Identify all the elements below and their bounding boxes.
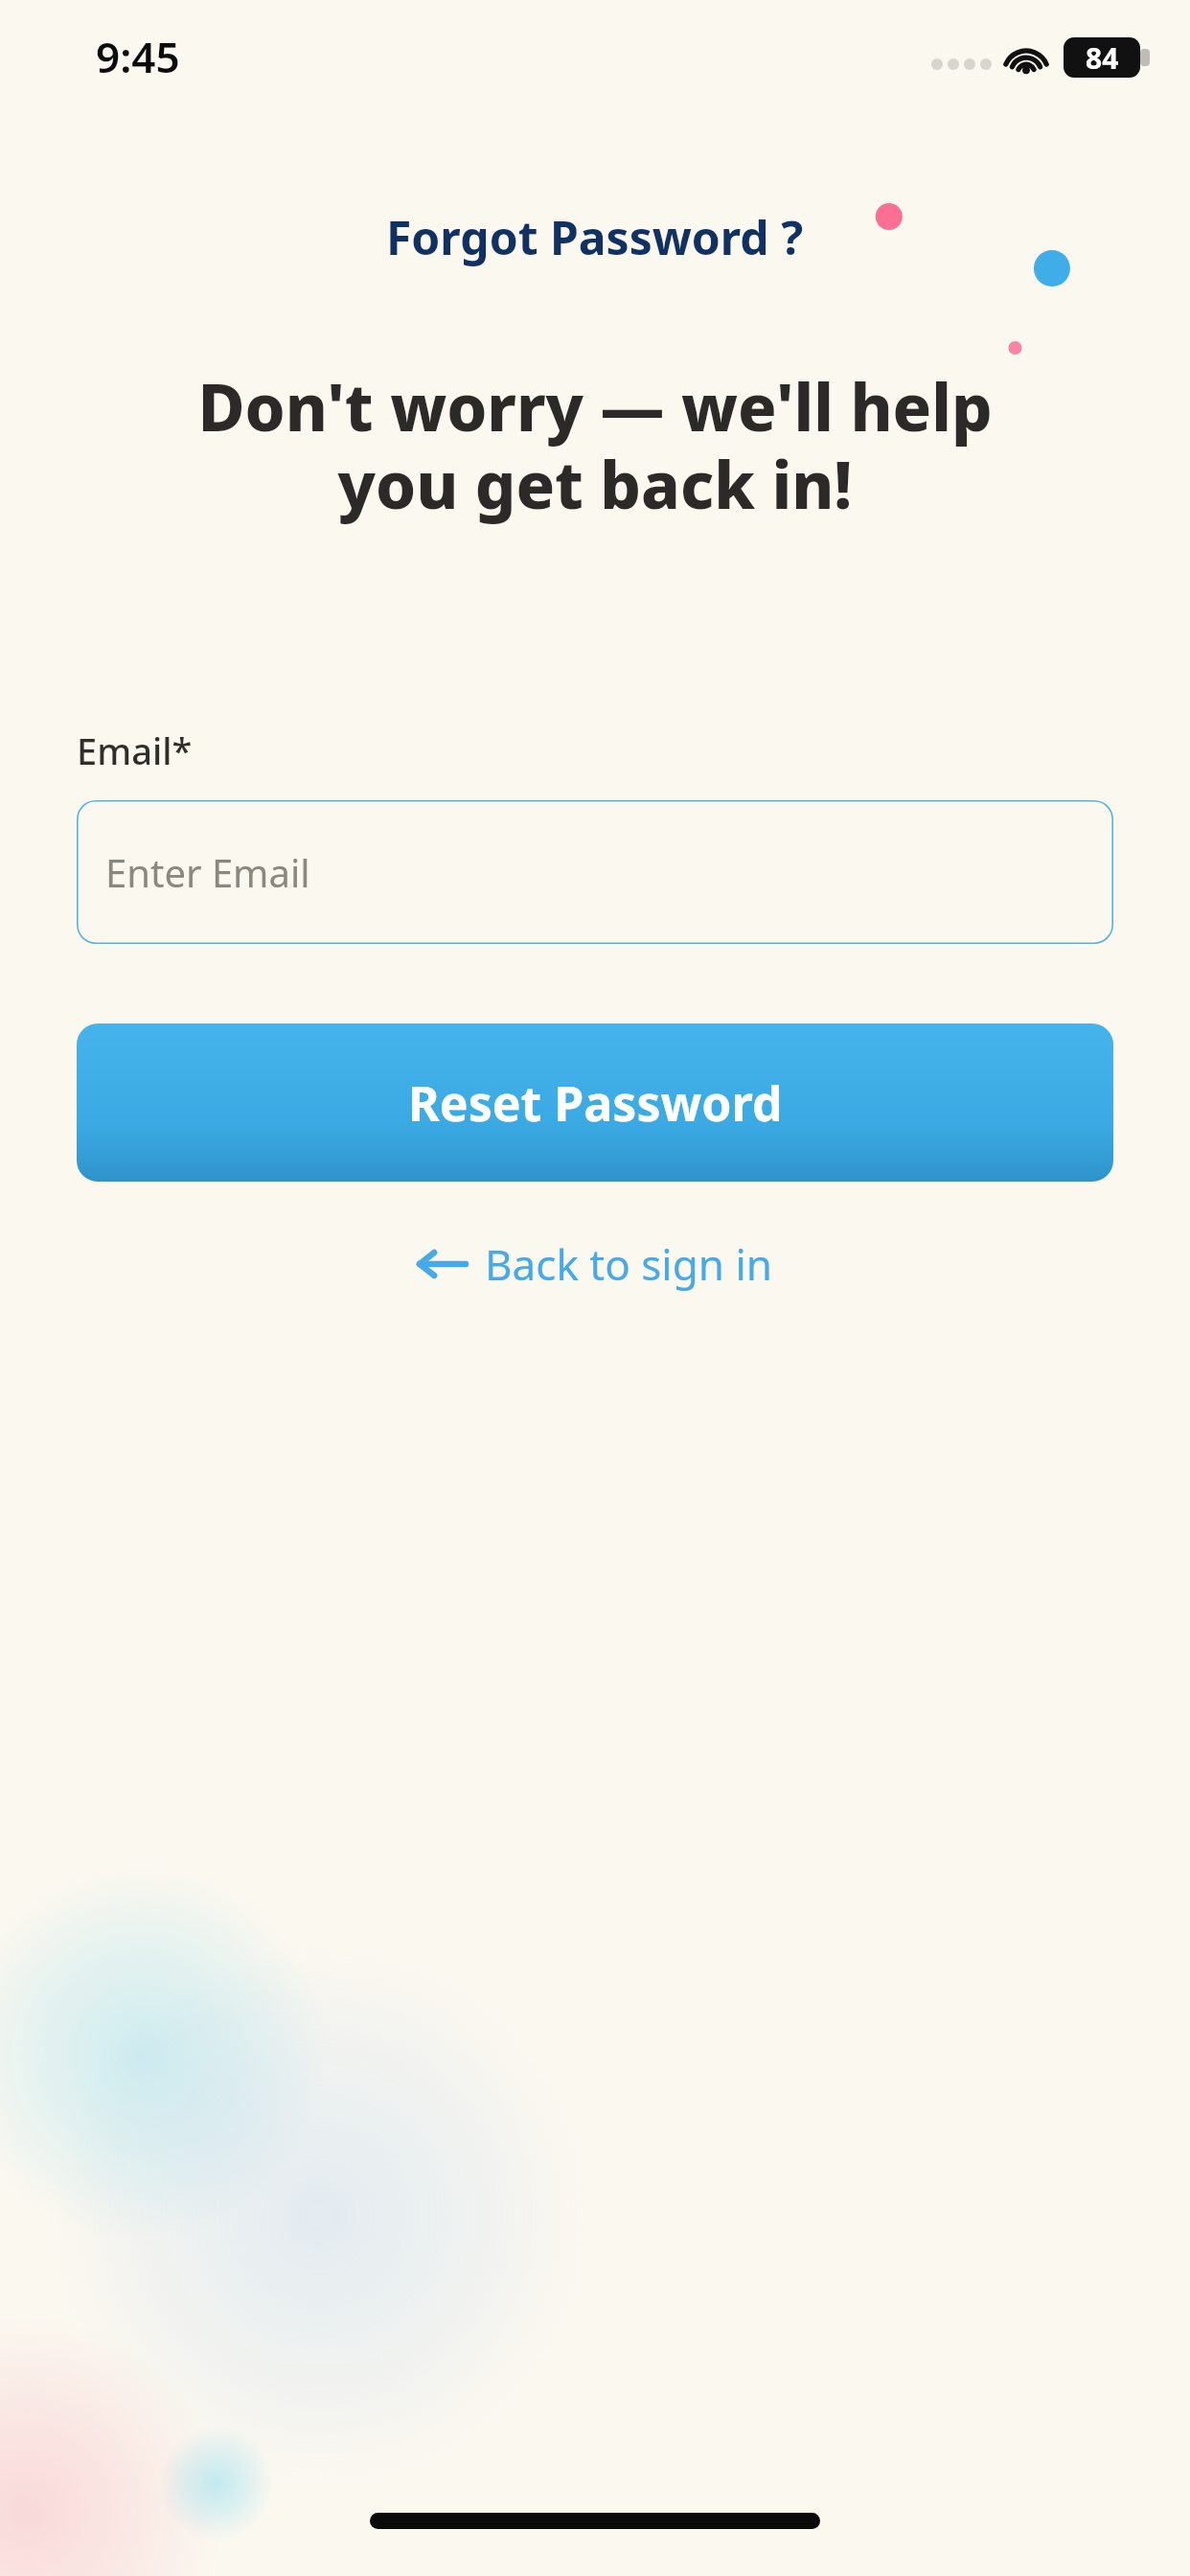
other: Home indicator: [370, 2513, 820, 2529]
staticText: Enter Email: [105, 846, 310, 898]
staticText: 84: [1086, 38, 1119, 78]
button[interactable]: Enter Email: [77, 800, 1113, 944]
staticText: Don't worry — we'll help you get back in…: [50, 362, 1140, 528]
staticText: Reset Password: [408, 1070, 783, 1136]
staticText: Back to sign in: [485, 1235, 772, 1293]
staticText: 9:45: [96, 28, 180, 85]
button[interactable]: Back to sign in: [402, 1222, 788, 1306]
staticText: Email*: [77, 725, 193, 775]
button[interactable]: Reset Password: [77, 1023, 1113, 1182]
staticText: Forgot Password ?: [386, 206, 804, 268]
